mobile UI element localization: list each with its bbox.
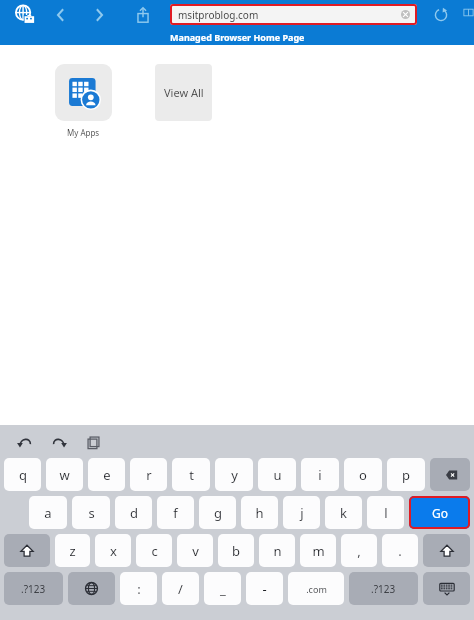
staticText: a (44, 504, 52, 522)
button[interactable]: w (46, 458, 83, 491)
staticText: g (214, 504, 222, 522)
staticText: u (273, 466, 282, 484)
staticText: f (173, 504, 178, 522)
staticText: . (398, 542, 402, 560)
button[interactable]: .?123 (4, 572, 63, 605)
button[interactable]: Back (50, 4, 72, 26)
staticText: z (69, 542, 76, 560)
staticText: h (255, 504, 264, 522)
button[interactable]: t (172, 458, 210, 491)
button[interactable]: d (115, 496, 152, 529)
button[interactable]: Undo (13, 430, 37, 454)
staticText: m (312, 542, 325, 560)
button[interactable]: _ (204, 572, 241, 605)
button[interactable]: m (300, 534, 336, 567)
staticText: i (318, 466, 322, 484)
button[interactable]: Paste (81, 430, 105, 454)
button[interactable]: e (88, 458, 125, 491)
button[interactable]: a (29, 496, 67, 529)
staticText: / (178, 580, 183, 598)
staticText: b (232, 542, 240, 560)
staticText: x (110, 542, 117, 560)
button[interactable]: View All (155, 64, 212, 121)
button[interactable]: l (367, 496, 404, 529)
staticText: s (88, 504, 95, 522)
button[interactable]: Shift (4, 534, 50, 567)
button[interactable]: q (4, 458, 41, 491)
staticText: d (130, 504, 138, 522)
button[interactable]: p (387, 458, 425, 491)
staticText: .com (306, 583, 327, 595)
button[interactable]: n (259, 534, 295, 567)
button[interactable]: o (344, 458, 382, 491)
staticText: o (359, 466, 367, 484)
button[interactable]: .?123 (349, 572, 418, 605)
staticText: q (19, 466, 27, 484)
staticText: n (273, 542, 282, 560)
button[interactable]: Reload (431, 5, 451, 25)
staticText: Managed Browser Home Page (170, 31, 305, 43)
button[interactable]: Bookmarks (463, 5, 474, 25)
button[interactable]: , (341, 534, 377, 567)
button[interactable]: h (241, 496, 278, 529)
button[interactable]: y (215, 458, 253, 491)
staticText: .?123 (371, 582, 396, 596)
staticText: w (59, 466, 70, 484)
staticText: v (192, 542, 199, 560)
staticText: : (137, 580, 141, 598)
staticText: r (146, 466, 152, 484)
staticText: - (262, 580, 267, 598)
staticText: y (231, 466, 238, 484)
button[interactable]: j (283, 496, 320, 529)
button[interactable]: Share (132, 4, 154, 26)
button[interactable]: s (72, 496, 110, 529)
staticText: _ (220, 580, 226, 598)
staticText: k (340, 504, 347, 522)
staticText: msitproblog.com (178, 8, 259, 22)
button[interactable]: . (382, 534, 418, 567)
button[interactable]: Redo (47, 430, 71, 454)
button[interactable]: v (177, 534, 213, 567)
button[interactable]: Change keyboard (68, 572, 115, 605)
staticText: e (103, 466, 111, 484)
button[interactable]: .com (288, 572, 344, 605)
button[interactable]: Backspace (430, 458, 470, 491)
button[interactable]: u (258, 458, 296, 491)
button[interactable]: b (218, 534, 254, 567)
staticText: My Apps (67, 127, 100, 138)
button[interactable]: g (199, 496, 236, 529)
staticText: View All (164, 85, 204, 100)
staticText: .?123 (21, 582, 46, 596)
button[interactable]: Forward (88, 4, 110, 26)
button[interactable]: - (246, 572, 283, 605)
button[interactable] (55, 64, 112, 121)
button[interactable]: k (325, 496, 362, 529)
staticText: , (357, 542, 361, 560)
staticText: t (189, 466, 194, 484)
button[interactable]: / (162, 572, 199, 605)
button[interactable]: Go (409, 496, 470, 529)
button[interactable]: c (136, 534, 172, 567)
button[interactable]: Managed browser (12, 2, 38, 28)
button[interactable]: x (95, 534, 131, 567)
staticText: c (151, 542, 158, 560)
button[interactable]: : (120, 572, 157, 605)
button[interactable]: r (130, 458, 167, 491)
button[interactable]: Hide keyboard (423, 572, 470, 605)
button[interactable]: Clear (401, 10, 410, 19)
staticText: Go (432, 505, 448, 521)
button[interactable]: f (157, 496, 194, 529)
staticText: j (300, 504, 304, 522)
staticText: l (384, 504, 388, 522)
staticText: p (402, 466, 410, 484)
button[interactable]: i (301, 458, 339, 491)
button[interactable]: msitproblog.com (170, 4, 417, 25)
button[interactable]: Shift (423, 534, 470, 567)
button[interactable]: z (55, 534, 90, 567)
